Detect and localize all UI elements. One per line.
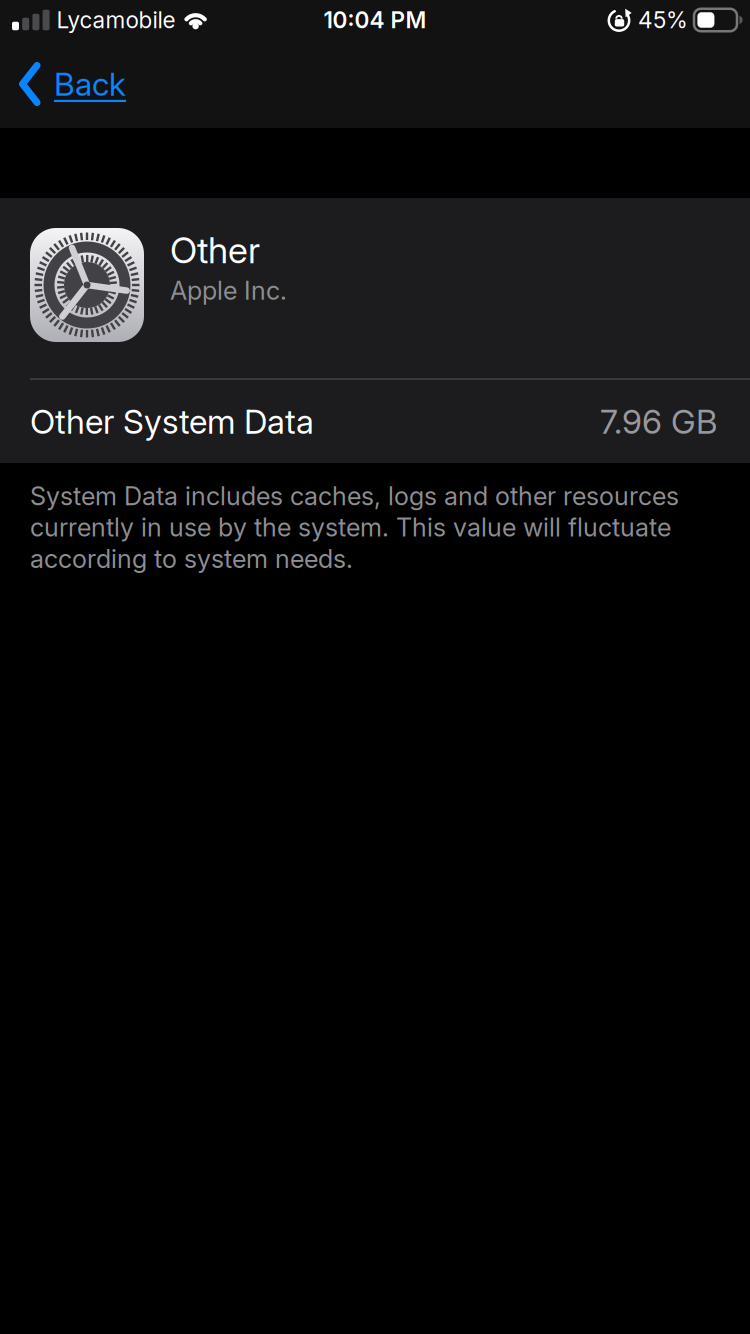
staticText: Other [170, 229, 260, 271]
staticText: System Data includes caches, logs and ot… [30, 481, 679, 574]
staticText: Apple Inc. [170, 275, 287, 305]
staticText: Back [54, 65, 126, 103]
button[interactable]: Back [19, 62, 126, 106]
staticText: 45% [638, 7, 688, 33]
staticText: 7.96 GB [600, 402, 717, 441]
staticText: Other System Data [30, 402, 314, 441]
staticText: Lycamobile [57, 7, 176, 33]
staticText: 10:04 PM [323, 7, 426, 33]
